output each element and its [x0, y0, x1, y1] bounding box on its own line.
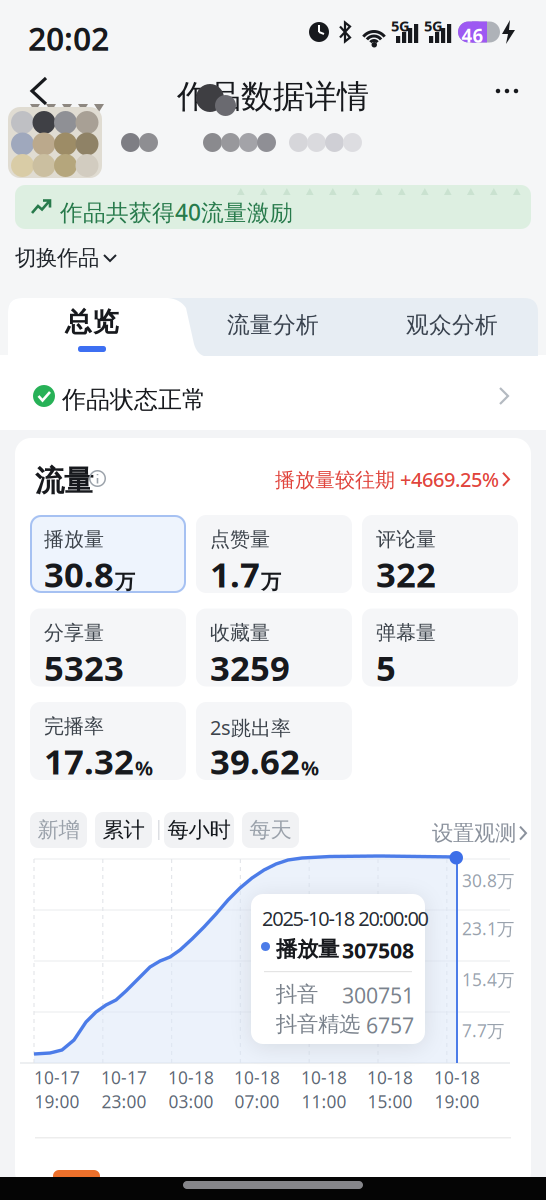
staticText: 10-17 [101, 1066, 147, 1089]
button[interactable]: 总览 [0, 0, 100, 40]
staticText: 5323 [44, 644, 124, 690]
staticText: 300751 [342, 981, 414, 1009]
button[interactable]: 累计 [95, 812, 152, 848]
staticText: 30.8 [44, 551, 114, 597]
staticText: 收藏量 [210, 620, 270, 645]
button[interactable]: 切换作品 [15, 246, 117, 270]
staticText: 5G [424, 16, 443, 35]
staticText: 10-18 [168, 1066, 214, 1089]
staticText: 流量 [35, 463, 93, 499]
staticText: 作品共获得40流量激励 [60, 197, 293, 227]
staticText: 23:00 [101, 1090, 146, 1113]
staticText: 23.1万 [462, 917, 514, 940]
staticText: 总览 [65, 306, 119, 338]
button[interactable]: 收藏量 [196, 608, 352, 686]
staticText: 46 [461, 23, 483, 48]
staticText: 评论量 [376, 527, 436, 552]
staticText: 10-18 [367, 1066, 413, 1089]
staticText: 分享量 [44, 620, 104, 645]
button[interactable]: 分享量 [30, 608, 186, 686]
staticText: 万 [115, 569, 135, 594]
staticText: 10-17 [34, 1066, 80, 1089]
button[interactable]: 流量分析 [0, 0, 140, 44]
staticText: 10-18 [301, 1066, 347, 1089]
staticText: 抖音精选 [276, 1011, 360, 1037]
staticText: 10-18 [434, 1066, 480, 1089]
staticText: 3259 [210, 644, 290, 690]
button[interactable]: More [0, 0, 50, 50]
staticText: 流量分析 [227, 311, 319, 339]
staticText: 2s跳出率 [210, 714, 291, 741]
staticText: 累计 [102, 817, 144, 843]
staticText: % [301, 754, 319, 781]
staticText: 5G [391, 16, 410, 35]
button[interactable]: 点赞量 [196, 515, 352, 593]
staticText: 5 [376, 644, 396, 690]
staticText: 03:00 [168, 1090, 213, 1113]
staticText: 15.4万 [462, 968, 514, 991]
staticText: 11:00 [301, 1090, 346, 1113]
staticText: 播放量较往期 +4669.25% [275, 466, 499, 493]
button[interactable]: 每小时 [164, 812, 234, 848]
staticText: 每天 [249, 817, 291, 843]
staticText: 10-18 [234, 1066, 280, 1089]
staticText: 每小时 [167, 817, 230, 843]
staticText: % [135, 754, 153, 781]
button[interactable]: 观众分析 [0, 0, 140, 44]
staticText: 30.8万 [462, 869, 514, 892]
button[interactable]: 2s跳出率 [196, 702, 352, 780]
staticText: 完播率 [44, 714, 104, 739]
staticText: 39.62 [210, 738, 300, 784]
button[interactable]: 作品状态正常 [0, 362, 546, 430]
staticText: 设置观测 [432, 820, 516, 846]
staticText: 抖音 [276, 981, 318, 1007]
staticText: 20:02 [28, 17, 109, 59]
staticText: 7.7万 [462, 1019, 504, 1042]
staticText: 17.32 [44, 738, 134, 784]
staticText: 15:00 [367, 1090, 412, 1113]
staticText: 07:00 [234, 1090, 279, 1113]
staticText: 作品状态正常 [62, 385, 206, 414]
staticText: 切换作品 [15, 245, 99, 271]
staticText: 观众分析 [406, 311, 498, 339]
staticText: 万 [261, 569, 281, 594]
staticText: 19:00 [34, 1090, 79, 1113]
staticText: 新增 [37, 817, 79, 843]
staticText: 1.7 [210, 551, 260, 597]
button[interactable]: 播放量较往期 +4669.25% [0, 466, 511, 493]
staticText: 322 [376, 551, 436, 597]
button[interactable]: Back [0, 0, 70, 120]
button[interactable]: 作品共获得40流量激励 [15, 185, 531, 229]
button[interactable]: 完播率 [30, 702, 186, 780]
button[interactable]: 播放量 [30, 515, 186, 593]
staticText: 播放量 [276, 936, 339, 962]
staticText: 2025-10-18 20:00:00 [262, 905, 429, 932]
button[interactable]: 评论量 [362, 515, 518, 593]
staticText: 6757 [366, 1011, 414, 1039]
staticText: 点赞量 [210, 527, 270, 552]
button[interactable]: 新增 [30, 812, 87, 848]
button[interactable]: 每天 [242, 812, 299, 848]
staticText: 播放量 [44, 527, 104, 552]
staticText: 19:00 [434, 1090, 479, 1113]
button[interactable]: Promote [53, 1170, 100, 1188]
staticText: 弹幕量 [376, 620, 436, 645]
button[interactable]: 弹幕量 [362, 608, 518, 686]
staticText: 作品数据详情 [177, 77, 369, 116]
staticText: 307508 [342, 936, 414, 964]
